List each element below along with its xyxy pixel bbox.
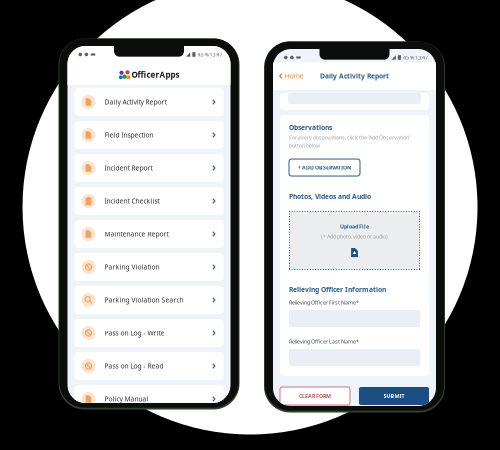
staticText: 45 % 13:47: [197, 51, 222, 58]
staticText: Parking Violation: [104, 263, 159, 271]
button[interactable]: Home: [273, 69, 310, 83]
staticText: Daily Activity Report: [320, 72, 389, 80]
button[interactable]: Incident Report: [74, 154, 223, 182]
staticText: SUBMIT: [383, 392, 404, 400]
staticText: Daily Activity Report: [104, 98, 166, 106]
staticText: Pass on Log - Write: [104, 329, 164, 337]
button[interactable]: Policy Manual: [74, 385, 223, 413]
staticText: Relieving Officer First Name*: [289, 299, 359, 306]
button[interactable]: SUBMIT: [359, 387, 429, 405]
button[interactable]: Field Inspection: [74, 121, 223, 149]
staticText: Maintenance Report: [104, 230, 168, 238]
button[interactable]: Pass on Log - Write: [74, 319, 223, 347]
staticText: Relieving Officer Information: [289, 285, 386, 294]
staticText: Photos, Videos and Audio: [289, 192, 371, 201]
button[interactable]: Parking Violation Search: [74, 286, 223, 314]
button[interactable]: Pass on Log - Read: [74, 352, 223, 380]
staticText: Home: [285, 72, 304, 80]
staticText: Relieving Officer Last Name*: [289, 338, 359, 345]
staticText: Observations: [289, 123, 332, 132]
staticText: Policy Manual: [104, 395, 148, 403]
staticText: Upload File: [340, 223, 369, 230]
button[interactable]: CLEAR FORM: [280, 387, 350, 405]
staticText: Pass on Log - Read: [104, 362, 163, 370]
staticText: OfficerApps: [131, 69, 179, 80]
button[interactable]: Parking Violation: [74, 253, 223, 281]
button[interactable]: Maintenance Report: [74, 220, 223, 248]
staticText: button below: [289, 142, 320, 149]
staticText: Incident Checklist: [104, 197, 159, 205]
staticText: + ADD OBSERVATION: [298, 164, 351, 171]
staticText: For every observations, click the 'Add O…: [289, 134, 410, 141]
staticText: CLEAR FORM: [299, 392, 331, 400]
button[interactable]: + ADD OBSERVATION: [289, 159, 360, 176]
button[interactable]: Incident Checklist: [74, 187, 223, 215]
staticText: Parking Violation Search: [104, 296, 183, 304]
staticText: Incident Report: [104, 164, 152, 172]
staticText: (+ Add photo, video or audio): [321, 233, 388, 240]
staticText: Field Inspection: [104, 131, 153, 139]
button[interactable]: Daily Activity Report: [74, 88, 223, 116]
staticText: 45 % 13:47: [403, 54, 428, 61]
